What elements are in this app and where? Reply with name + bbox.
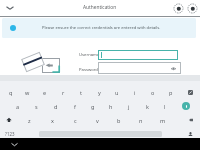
button[interactable]: b <box>108 115 130 125</box>
button[interactable]: d <box>46 101 65 111</box>
staticText: t <box>80 89 82 96</box>
button[interactable]: y <box>90 87 108 97</box>
button[interactable]: Backspace <box>185 115 196 125</box>
button[interactable]: Show password <box>170 65 177 72</box>
staticText: Please ensure the correct credentials ar… <box>42 25 161 31</box>
staticText: a <box>16 103 20 110</box>
staticText: x <box>51 117 54 124</box>
button[interactable]: r <box>54 87 72 97</box>
button[interactable]: Please ensure the correct credentials ar… <box>2 18 196 38</box>
staticText: Username <box>79 52 100 58</box>
button[interactable]: i <box>126 87 144 97</box>
staticText: w <box>25 89 30 96</box>
button[interactable]: n <box>130 115 152 125</box>
staticText: u <box>115 89 119 96</box>
staticText: r <box>62 89 65 96</box>
staticText: j <box>128 103 130 110</box>
button[interactable]: s <box>27 101 46 111</box>
staticText: ?123 <box>5 131 15 137</box>
button[interactable]: h <box>102 101 120 111</box>
staticText: g <box>91 103 95 110</box>
staticText: y <box>98 89 101 96</box>
button[interactable]: Hide keyboard <box>9 139 20 150</box>
staticText: s <box>35 103 38 110</box>
staticText: Password <box>79 67 98 73</box>
staticText: z <box>28 117 31 124</box>
button[interactable]: f <box>65 101 84 111</box>
staticText: q <box>9 89 13 96</box>
button[interactable]: c <box>64 115 86 125</box>
button[interactable]: Account <box>186 2 198 14</box>
staticText: h <box>109 103 113 110</box>
button[interactable]: Voice input <box>185 129 196 139</box>
staticText: m <box>160 117 166 124</box>
button[interactable]: u <box>108 87 126 97</box>
button[interactable]: z <box>18 115 41 125</box>
button[interactable]: Enter <box>182 102 190 110</box>
button[interactable]: Show password <box>98 62 181 74</box>
staticText: c <box>74 117 77 124</box>
button[interactable]: v <box>86 115 108 125</box>
staticText: b <box>117 117 121 124</box>
staticText: e <box>43 89 47 96</box>
staticText: v <box>96 117 99 124</box>
button[interactable]: x <box>41 115 64 125</box>
button[interactable]: e <box>36 87 54 97</box>
button[interactable]: o <box>144 87 162 97</box>
staticText: d <box>54 103 58 110</box>
button[interactable]: Clear <box>185 87 196 98</box>
button[interactable]: j <box>120 101 138 111</box>
staticText: n <box>139 117 143 124</box>
button[interactable]: t <box>72 87 90 97</box>
staticText: l <box>164 103 166 110</box>
button[interactable]: k <box>138 101 156 111</box>
staticText: Authentication <box>83 4 117 11</box>
button[interactable]: p <box>162 87 180 97</box>
button[interactable]: g <box>84 101 102 111</box>
staticText: i <box>134 89 136 96</box>
button[interactable]: q <box>2 87 19 97</box>
button[interactable]: Collapse <box>3 1 16 14</box>
staticText: p <box>169 89 173 96</box>
button[interactable]: w <box>19 87 36 97</box>
staticText: f <box>74 103 76 110</box>
button[interactable]: l <box>156 101 174 111</box>
staticText: k <box>146 103 149 110</box>
button[interactable]: Help <box>172 2 184 14</box>
button[interactable]: Shift <box>2 115 16 125</box>
staticText: o <box>151 89 155 96</box>
button[interactable] <box>98 50 178 60</box>
button[interactable]: a <box>8 101 27 111</box>
button[interactable]: ?123 <box>1 129 19 139</box>
button[interactable]: m <box>152 115 174 125</box>
